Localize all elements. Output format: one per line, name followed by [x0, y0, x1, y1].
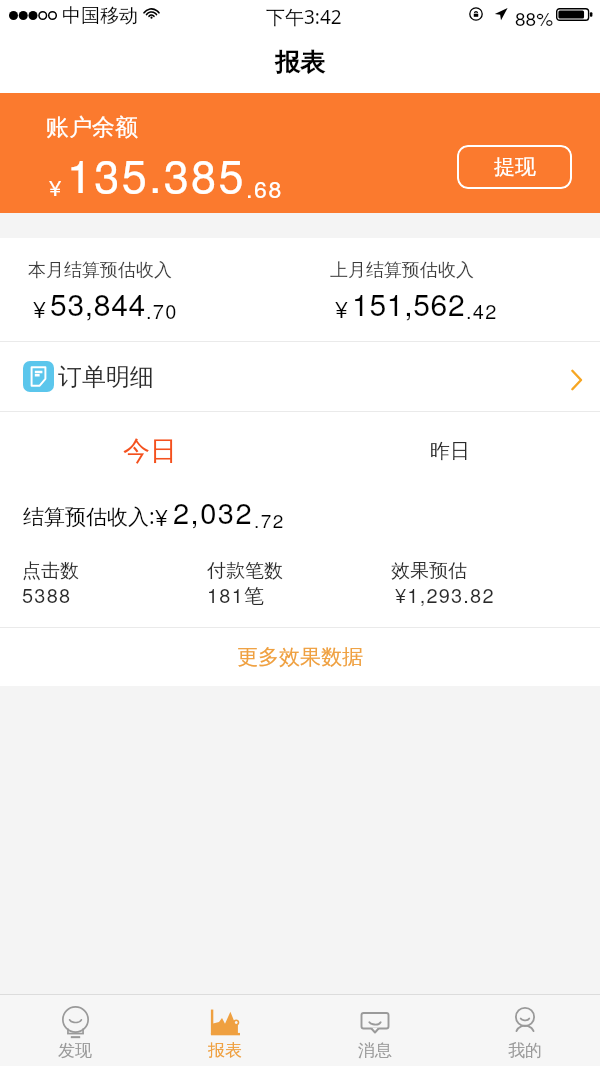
button[interactable]: 提现	[457, 145, 572, 189]
staticText: .70	[146, 296, 178, 325]
staticText: 昨日	[430, 439, 470, 464]
staticText: 账户余额	[46, 113, 138, 142]
staticText: .68	[246, 172, 283, 205]
staticText: 点击数	[22, 559, 79, 583]
other: Open order details	[570, 369, 583, 391]
staticText: 报表	[208, 1040, 242, 1061]
staticText: 151,562	[352, 282, 466, 325]
staticText: 提现	[494, 154, 536, 180]
staticText: ¥	[155, 500, 168, 533]
staticText: 报表	[275, 47, 325, 78]
staticText: ¥	[335, 292, 348, 325]
staticText: 发现	[58, 1040, 92, 1061]
staticText: 本月结算预估收入	[28, 259, 172, 282]
staticText: 付款笔数	[207, 559, 283, 583]
staticText: 2,032	[173, 491, 254, 533]
button[interactable]: 我的	[450, 995, 600, 1066]
staticText: 中国移动	[62, 4, 138, 28]
staticText: 53,844	[50, 282, 146, 325]
staticText: 今日	[123, 434, 177, 468]
staticText: 88%	[515, 4, 554, 31]
staticText: 消息	[358, 1040, 392, 1061]
staticText: 181笔	[207, 580, 266, 609]
staticText: 下午3:42	[266, 4, 342, 30]
other: Battery 88 percent	[556, 8, 593, 21]
staticText: ¥	[49, 171, 62, 203]
other: Location	[494, 7, 508, 21]
staticText: ¥1,293.82	[395, 580, 495, 609]
other: Rotation lock	[468, 7, 484, 21]
button[interactable]: 报表	[150, 995, 300, 1066]
staticText: 135.385	[67, 141, 246, 205]
button[interactable]: 发现	[0, 995, 150, 1066]
staticText: ¥	[33, 292, 46, 325]
staticText: 订单明细	[58, 362, 154, 392]
button[interactable]: 更多效果数据	[0, 628, 600, 686]
staticText: 效果预估	[391, 559, 467, 583]
button[interactable]: 昨日	[300, 422, 600, 480]
button[interactable]: 今日	[0, 422, 300, 480]
staticText: 更多效果数据	[237, 644, 363, 670]
staticText: .72	[254, 506, 285, 533]
button[interactable]: 消息	[300, 995, 450, 1066]
staticText: 结算预估收入:	[23, 502, 155, 531]
staticText: 我的	[508, 1040, 542, 1061]
staticText: 上月结算预估收入	[330, 259, 474, 282]
button[interactable]: 订单明细	[0, 342, 600, 411]
staticText: .42	[466, 296, 498, 325]
staticText: 5388	[22, 580, 72, 609]
